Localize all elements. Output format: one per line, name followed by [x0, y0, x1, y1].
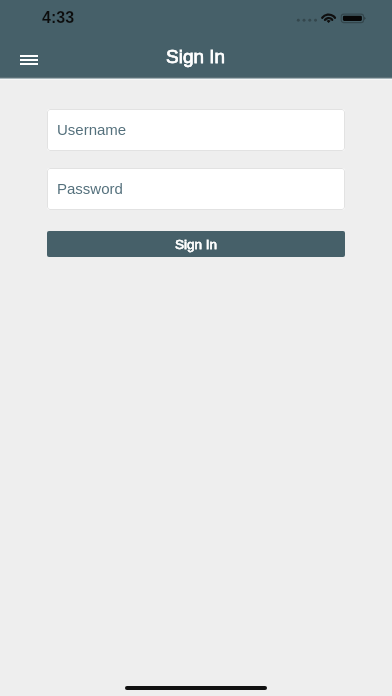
button[interactable]: Sign In [47, 231, 345, 257]
staticText: Sign In [175, 237, 218, 252]
staticText: 4:33 [42, 9, 75, 27]
staticText: Username [57, 121, 127, 138]
button[interactable]: Open navigation menu [11, 45, 47, 75]
staticText: Sign In [166, 46, 226, 67]
button[interactable]: Password [47, 168, 345, 210]
button[interactable]: Username [47, 109, 345, 151]
staticText: Sign In [166, 46, 226, 67]
staticText: Password [57, 180, 123, 197]
staticText: Sign In [175, 237, 218, 252]
